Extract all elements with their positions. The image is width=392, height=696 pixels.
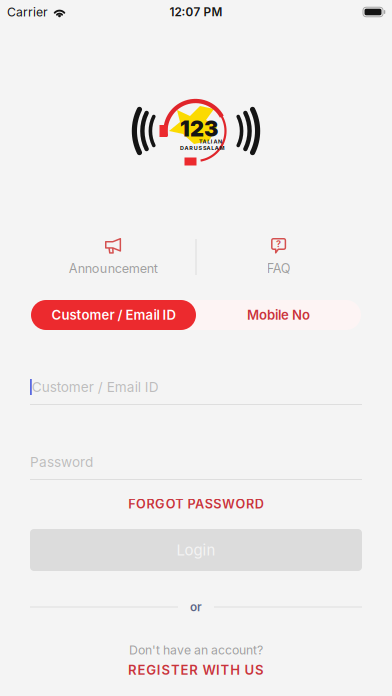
staticText: Mobile No	[247, 307, 310, 323]
staticText: REGISTER WITH US	[128, 662, 264, 678]
staticText: FORGOT PASSWORD	[128, 496, 264, 512]
staticText: Customer / Email ID	[51, 307, 175, 323]
staticText: Announcement	[69, 261, 158, 276]
button[interactable]: REGISTER WITH US	[30, 661, 362, 679]
button[interactable]: FORGOT PASSWORD	[30, 496, 362, 512]
staticText: Login	[176, 541, 215, 559]
staticText: 123	[180, 115, 218, 142]
staticText: Carrier	[7, 5, 48, 19]
staticText: Password	[30, 454, 93, 470]
staticText: FAQ	[267, 261, 291, 276]
button[interactable]: ?	[196, 237, 361, 277]
staticText: DARUSSALAM	[180, 145, 224, 151]
button[interactable]: Announcement	[31, 237, 195, 277]
staticText: ?	[276, 238, 281, 249]
staticText: 12:07 PM	[169, 5, 222, 19]
staticText: TALIAN	[199, 138, 222, 145]
staticText: Customer / Email ID	[32, 379, 159, 395]
button[interactable]: Mobile No	[196, 300, 361, 330]
staticText: Don't have an account?	[129, 643, 263, 657]
staticText: or	[190, 600, 202, 614]
button[interactable]: Customer / Email ID	[31, 300, 196, 330]
